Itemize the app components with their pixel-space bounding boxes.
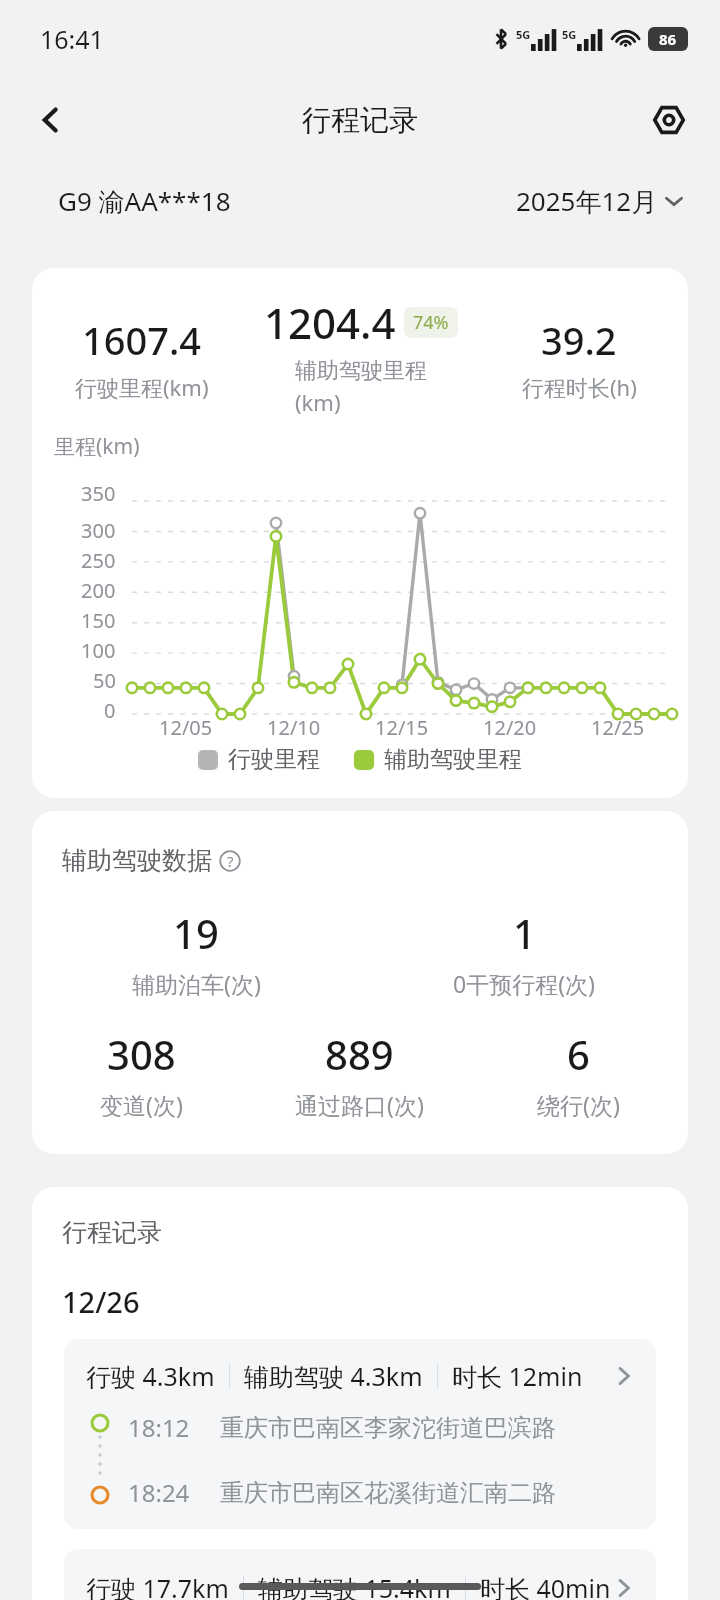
staticText: 12/05 [159, 714, 213, 741]
staticText: 350 [81, 480, 116, 507]
staticText: 50 [93, 667, 116, 694]
staticText: 辅助驾驶 4.3km [244, 1359, 423, 1393]
staticText: 绕行(次) [537, 1089, 620, 1120]
staticText: 12/10 [267, 714, 321, 741]
staticText: 200 [81, 577, 116, 604]
staticText: 行驶里程 [228, 745, 320, 774]
staticText: G9 渝AA***18 [58, 183, 231, 219]
staticText: 0 [104, 697, 116, 724]
staticText: 时长 12min [452, 1359, 583, 1393]
staticText: 通过路口(次) [295, 1089, 424, 1120]
staticText: 12/15 [375, 714, 429, 741]
staticText: 1 [513, 906, 536, 960]
staticText: 辅助驾驶里程 [384, 745, 522, 774]
staticText: 辅助驾驶数据 [62, 845, 212, 876]
staticText: 12/26 [62, 1282, 140, 1321]
staticText: 18:12 [128, 1411, 190, 1444]
staticText: 行驶里程(km) [75, 372, 209, 402]
staticText: 308 [107, 1027, 176, 1081]
staticText: ? [227, 851, 234, 871]
button[interactable]: 2025年12月 [516, 183, 684, 219]
staticText: 16:41 [40, 22, 104, 56]
button[interactable]: 行驶 17.7km [64, 1549, 656, 1600]
staticText: 行程记录 [302, 102, 418, 139]
staticText: 889 [325, 1027, 394, 1081]
staticText: 行程记录 [62, 1217, 162, 1248]
button[interactable]: Settings [640, 91, 698, 149]
staticText: 辅助驾驶 15.4km [258, 1571, 451, 1600]
staticText: 变道(次) [100, 1089, 183, 1120]
staticText: 74% [413, 310, 449, 335]
staticText: 行驶 17.7km [86, 1571, 229, 1600]
staticText: 5G [562, 27, 577, 42]
staticText: 1607.4 [82, 314, 202, 366]
staticText: 重庆市巴南区花溪街道汇南二路 [220, 1478, 556, 1508]
staticText: 12/25 [591, 714, 645, 741]
staticText: 86 [659, 29, 677, 49]
button[interactable]: Back [22, 91, 80, 149]
staticText: 0干预行程(次) [453, 968, 595, 999]
staticText: 2025年12月 [516, 183, 658, 219]
staticText: 39.2 [541, 314, 617, 366]
staticText: 300 [81, 517, 116, 544]
staticText: 行程时长(h) [522, 372, 637, 402]
staticText: 19 [173, 906, 219, 960]
staticText: 辅助泊车(次) [132, 968, 261, 999]
staticText: 6 [567, 1027, 590, 1081]
staticText: 重庆市巴南区李家沱街道巴滨路 [220, 1413, 556, 1443]
staticText: 100 [81, 637, 116, 664]
staticText: 辅助驾驶里程 (km) [295, 357, 427, 418]
staticText: 里程(km) [54, 432, 140, 461]
staticText: 时长 40min [480, 1571, 611, 1600]
staticText: 1204.4 [264, 294, 396, 351]
staticText: 250 [81, 547, 116, 574]
staticText: 行驶 4.3km [86, 1359, 215, 1393]
staticText: 12/20 [483, 714, 537, 741]
button[interactable]: Help [218, 849, 242, 873]
staticText: 18:24 [128, 1476, 190, 1509]
staticText: 150 [81, 607, 116, 634]
button[interactable]: 行驶 4.3km [64, 1339, 656, 1529]
staticText: 5G [516, 27, 531, 42]
